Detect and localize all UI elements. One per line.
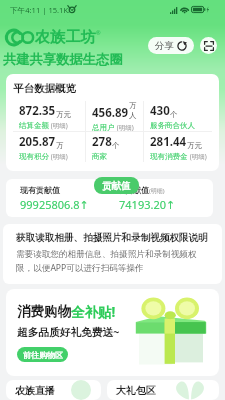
staticText: 281.44 xyxy=(150,134,187,150)
button[interactable]: 消费购物 xyxy=(6,289,219,376)
button[interactable]: Scan QR code xyxy=(200,37,217,54)
staticText: 872.35 xyxy=(19,103,56,119)
staticText: 共建共享数据生态圈 xyxy=(3,51,123,68)
staticText: (明细) xyxy=(115,123,134,131)
button[interactable]: 贡献值 xyxy=(94,177,139,194)
staticText: 万人 xyxy=(129,101,143,121)
staticText: 分享 xyxy=(155,40,174,52)
button[interactable]: 大礼包区 xyxy=(107,380,219,400)
staticText: 全补贴! xyxy=(71,303,116,321)
staticText: 服务商合伙人 xyxy=(150,121,195,130)
staticText: 万 xyxy=(56,141,64,150)
staticText: 农族直播 xyxy=(15,384,55,397)
staticText: 消费购物 xyxy=(17,303,71,320)
staticText: 农族工坊 xyxy=(35,28,96,47)
staticText: 需要读取您的相册信息、拍摄照片和录制视频权限，以便APP可以进行扫码等操作 xyxy=(16,249,211,274)
staticText: (明细) xyxy=(188,152,207,161)
button[interactable]: 分享 xyxy=(148,37,194,54)
staticText: 平台数据概览 xyxy=(13,82,76,95)
staticText: 下午4:11 | 15.1K/s xyxy=(10,5,75,15)
staticText: 现有消费金 xyxy=(150,152,188,161)
staticText: 大礼包区 xyxy=(116,384,156,397)
staticText: 获取读取相册、拍摄照片和录制视频权限说明 xyxy=(16,232,208,244)
staticText: 278 xyxy=(92,134,112,150)
staticText: 现有积分 xyxy=(19,152,49,161)
staticText: 结算金额 xyxy=(19,121,49,130)
staticText: 205.87 xyxy=(19,134,56,150)
staticText: ® xyxy=(96,29,101,36)
staticText: 个 xyxy=(112,141,120,150)
button[interactable]: 前往购物区 xyxy=(17,347,68,362)
staticText: 99925806.8↑ xyxy=(20,197,89,212)
staticText: 74193.20↑ xyxy=(119,197,176,212)
staticText: 贡献值 xyxy=(102,180,131,192)
staticText: (明细) xyxy=(49,121,68,130)
staticText: 个 xyxy=(170,110,178,119)
button[interactable]: 农族直播 xyxy=(6,380,101,400)
staticText: 万元 xyxy=(56,110,71,119)
staticText: 万元 xyxy=(187,141,202,150)
staticText: (明细) xyxy=(149,187,165,195)
staticText: 现有贡献值 xyxy=(20,185,60,195)
staticText: 总用户 xyxy=(92,123,115,131)
staticText: 430 xyxy=(150,103,170,119)
staticText: 超多品质好礼免费送~ xyxy=(17,325,120,340)
staticText: 456.89 xyxy=(92,105,129,121)
staticText: 商家 xyxy=(92,152,107,161)
staticText: 前往购物区 xyxy=(23,350,63,360)
staticText: (明细) xyxy=(49,152,68,161)
staticText: 已领贡献值 xyxy=(109,185,149,195)
